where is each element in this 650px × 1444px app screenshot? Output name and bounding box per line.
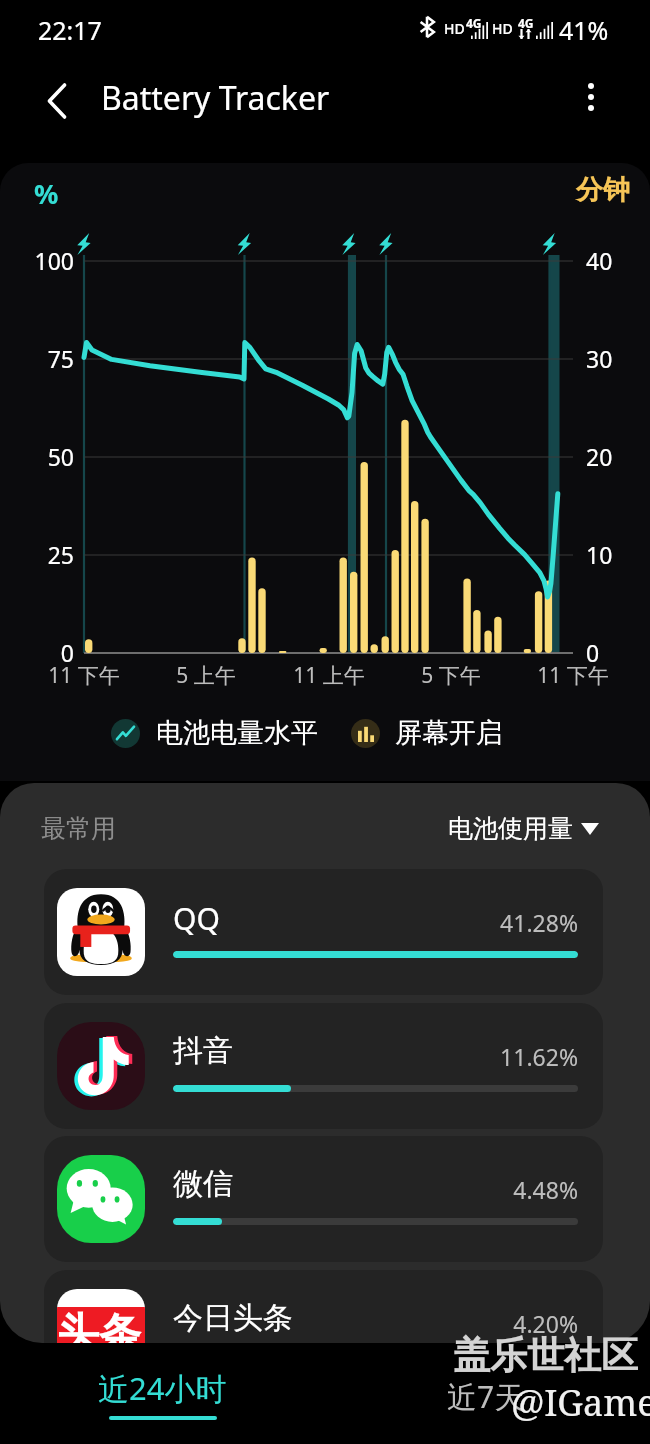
staticText: 75	[0, 343, 74, 374]
staticText: 0	[0, 637, 74, 668]
staticText: 30	[586, 343, 646, 374]
staticText: 11 上午	[259, 661, 399, 690]
staticText: %	[34, 175, 94, 212]
staticText: 分钟	[470, 173, 630, 207]
staticText: 近7天	[447, 1376, 525, 1417]
staticText: 40	[586, 245, 646, 276]
button[interactable]: 屏幕开启	[343, 712, 511, 754]
staticText: 10	[586, 539, 646, 570]
staticText: 11 下午	[14, 661, 154, 690]
staticText: 11 下午	[503, 661, 643, 690]
button[interactable]: 抖音	[44, 1003, 603, 1129]
button[interactable]: 微信	[44, 1136, 603, 1262]
staticText: 41%	[559, 13, 609, 47]
staticText: 5 上午	[136, 661, 276, 690]
staticText: HD	[444, 19, 465, 38]
staticText: QQ	[173, 898, 220, 939]
staticText: 20	[586, 441, 646, 472]
staticText: 22:17	[38, 13, 102, 47]
button[interactable]: 近7天	[379, 1375, 592, 1417]
button[interactable]: QQ	[44, 869, 603, 995]
staticText: 0	[586, 637, 646, 668]
button[interactable]: More options	[562, 68, 620, 126]
staticText: 电池电量水平	[156, 716, 318, 750]
staticText: 25	[0, 539, 74, 570]
staticText: 4G	[518, 15, 534, 31]
staticText: 电池使用量	[448, 813, 573, 844]
staticText: 盖乐世社区	[453, 1332, 638, 1379]
staticText: 屏幕开启	[395, 716, 503, 750]
staticText: 微信	[173, 1165, 233, 1203]
button[interactable]: 电池电量水平	[103, 712, 326, 754]
staticText: 今日头条	[173, 1299, 293, 1337]
staticText: 头条	[57, 1308, 143, 1343]
staticText: 抖音	[173, 1032, 233, 1070]
staticText: 50	[0, 441, 74, 472]
staticText: 100	[0, 245, 74, 276]
staticText: 11.62%	[414, 1041, 578, 1072]
staticText: 5 下午	[381, 661, 521, 690]
button[interactable]: 近24小时	[56, 1367, 269, 1420]
staticText: 近24小时	[98, 1367, 227, 1409]
staticText: 41.28%	[414, 907, 578, 938]
staticText: @IGame	[511, 1378, 650, 1427]
button[interactable]: 电池使用量	[442, 807, 605, 850]
staticText: 4G	[466, 15, 482, 31]
button[interactable]: Back	[28, 72, 86, 130]
staticText: 4.20%	[414, 1308, 578, 1339]
staticText: HD	[492, 19, 513, 38]
staticText: Battery Tracker	[101, 76, 330, 120]
button[interactable]: 头条	[44, 1270, 603, 1343]
staticText: 最常用	[41, 813, 116, 844]
staticText: 4.48%	[414, 1174, 578, 1205]
